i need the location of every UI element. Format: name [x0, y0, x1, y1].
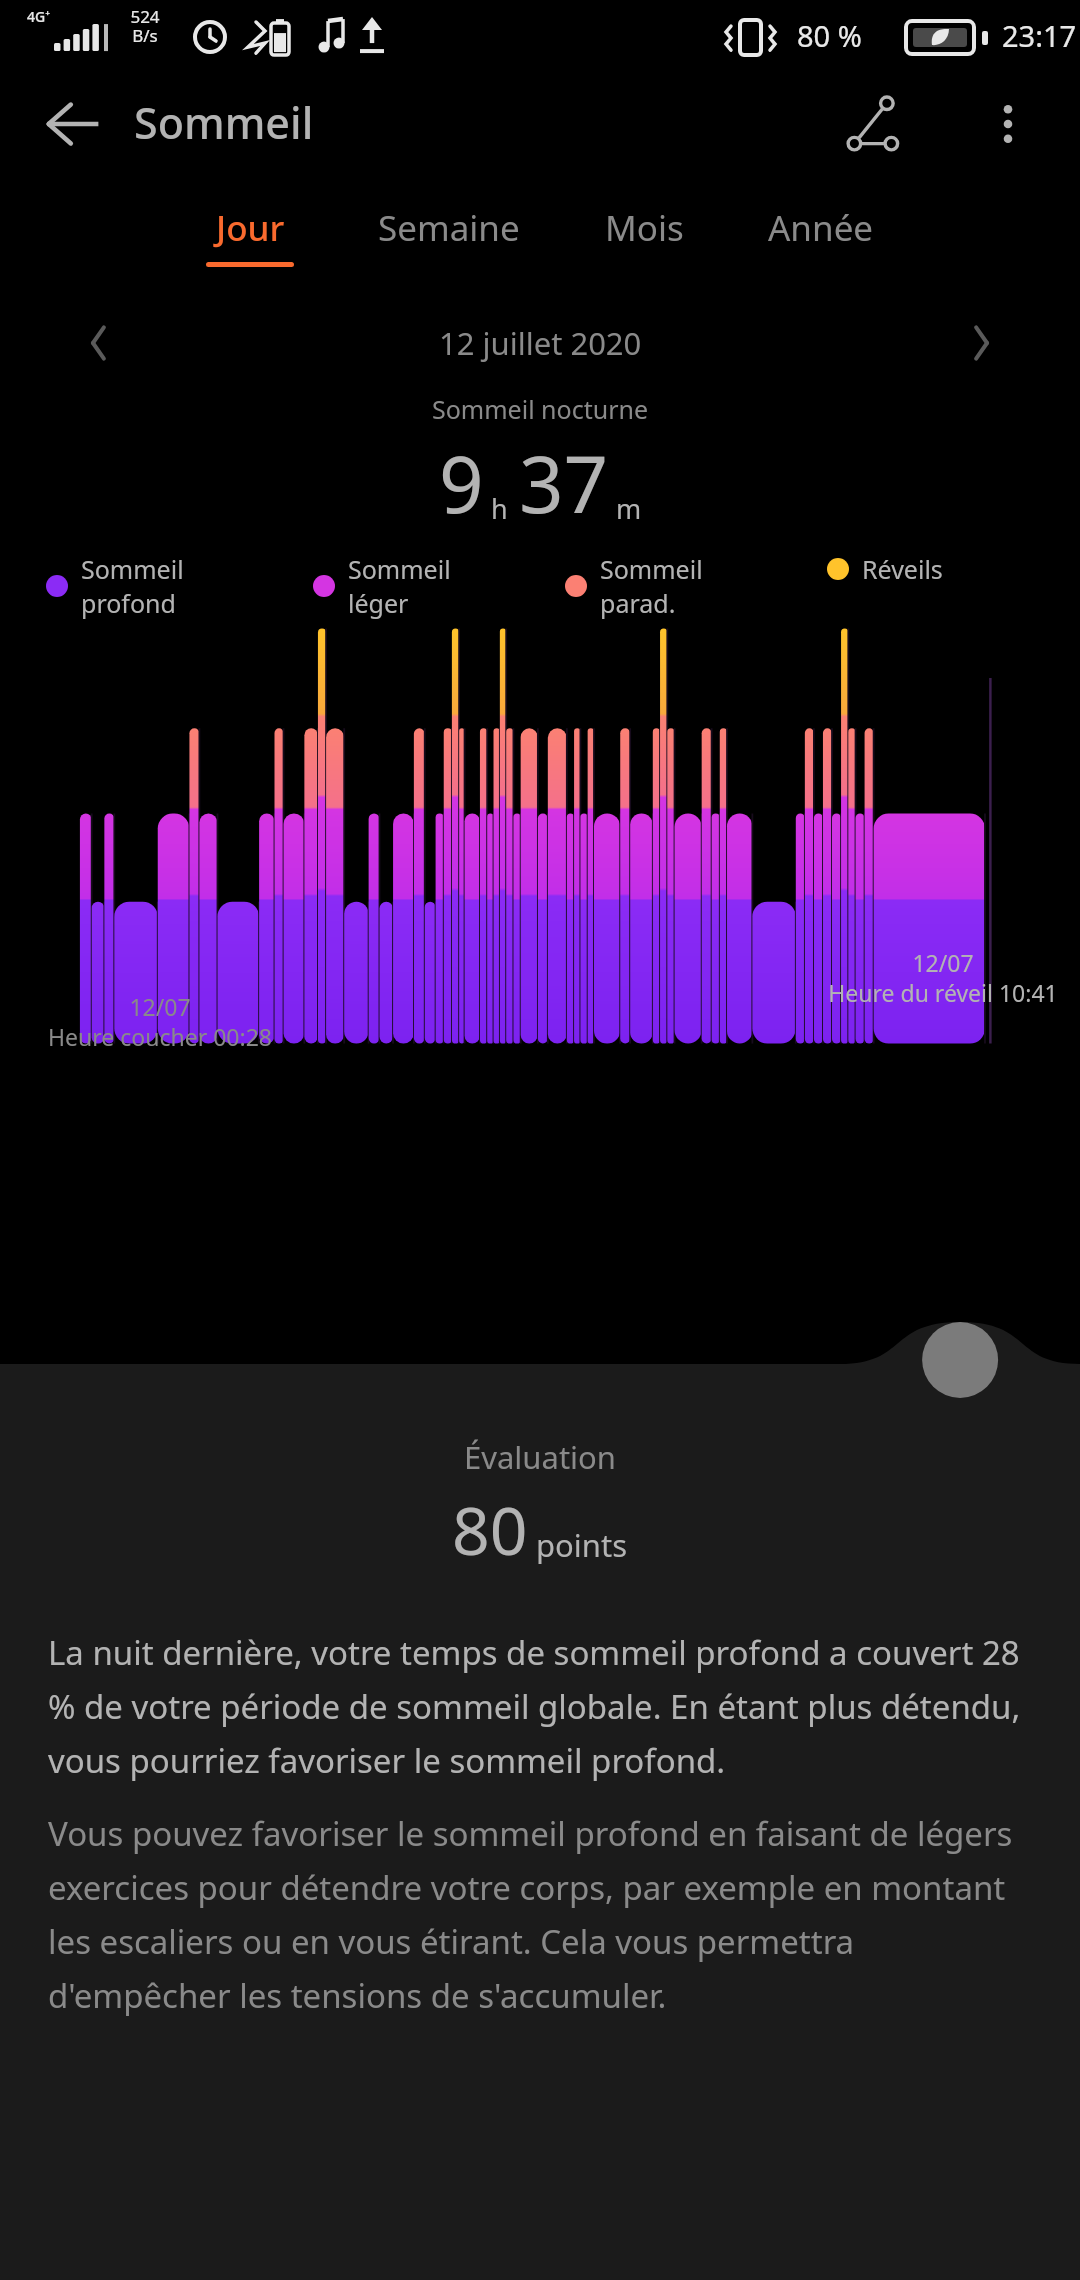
- staticText: 4G⁺: [27, 7, 51, 26]
- staticText: Évaluation: [0, 1436, 1080, 1478]
- button[interactable]: Sommeil: [313, 552, 565, 620]
- button[interactable]: Sommeil: [46, 552, 313, 620]
- staticText: Sommeil: [134, 93, 314, 152]
- staticText: Sommeil nocturne: [0, 392, 1080, 426]
- button[interactable]: Sleep details: [918, 1320, 1006, 1408]
- staticText: Sommeil: [348, 552, 451, 586]
- button[interactable]: Jour: [200, 180, 300, 267]
- staticText: 80: [452, 1484, 528, 1574]
- staticText: Mois: [605, 204, 684, 252]
- staticText: léger: [348, 586, 409, 620]
- button[interactable]: Back: [28, 79, 118, 169]
- button[interactable]: Semaine: [372, 180, 526, 262]
- button[interactable]: Mois: [599, 180, 690, 262]
- staticText: parad.: [600, 586, 676, 620]
- button[interactable]: Previous day: [56, 301, 140, 385]
- staticText: 12/07 Heure du réveil 10:41: [828, 947, 1058, 1008]
- staticText: 12/07 Heure coucher 00:28: [48, 991, 272, 1052]
- staticText: Semaine: [378, 204, 520, 252]
- staticText: Vous pouvez favoriser le sommeil profond…: [48, 1811, 1036, 2018]
- staticText: 23:17: [1002, 16, 1077, 55]
- staticText: 12 juillet 2020: [439, 322, 642, 364]
- button[interactable]: Share: [826, 76, 922, 172]
- staticText: La nuit dernière, votre temps de sommeil…: [48, 1630, 1036, 1783]
- staticText: profond: [81, 586, 176, 620]
- staticText: Sommeil: [600, 552, 703, 586]
- staticText: Jour: [216, 204, 285, 252]
- staticText: 524 B/s: [130, 5, 160, 47]
- staticText: 80 %: [797, 16, 862, 55]
- button[interactable]: Réveils: [827, 552, 1054, 586]
- button[interactable]: More options: [964, 80, 1052, 168]
- staticText: Année: [768, 204, 874, 252]
- staticText: 9: [439, 430, 484, 536]
- staticText: points: [536, 1524, 628, 1566]
- staticText: Réveils: [862, 552, 943, 586]
- staticText: m: [616, 490, 642, 527]
- button[interactable]: Next day: [940, 301, 1024, 385]
- staticText: 37: [519, 430, 609, 536]
- button[interactable]: Année: [762, 180, 880, 262]
- button[interactable]: Sommeil: [565, 552, 827, 620]
- staticText: h: [491, 490, 508, 527]
- staticText: Sommeil: [81, 552, 184, 586]
